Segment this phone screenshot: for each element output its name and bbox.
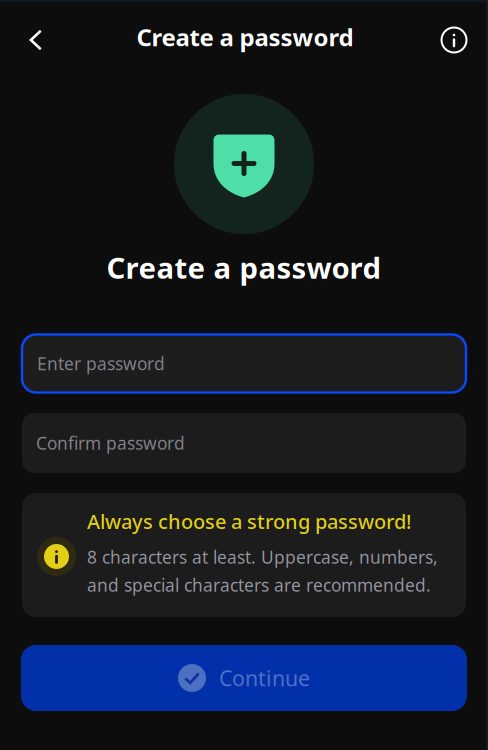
button[interactable]: Continue	[21, 645, 467, 711]
staticText: Always choose a strong password!	[87, 508, 411, 535]
button[interactable]: Back	[0, 15, 63, 65]
staticText: Enter password	[37, 352, 165, 375]
staticText: and special characters are recommended.	[87, 574, 431, 597]
button[interactable]: Information	[427, 15, 488, 65]
staticText: Create a password	[136, 21, 353, 53]
staticText: 8 characters at least. Uppercase, number…	[87, 546, 438, 569]
staticText: Create a password	[106, 248, 381, 287]
staticText: Continue	[219, 664, 310, 692]
staticText: Confirm password	[36, 431, 185, 454]
